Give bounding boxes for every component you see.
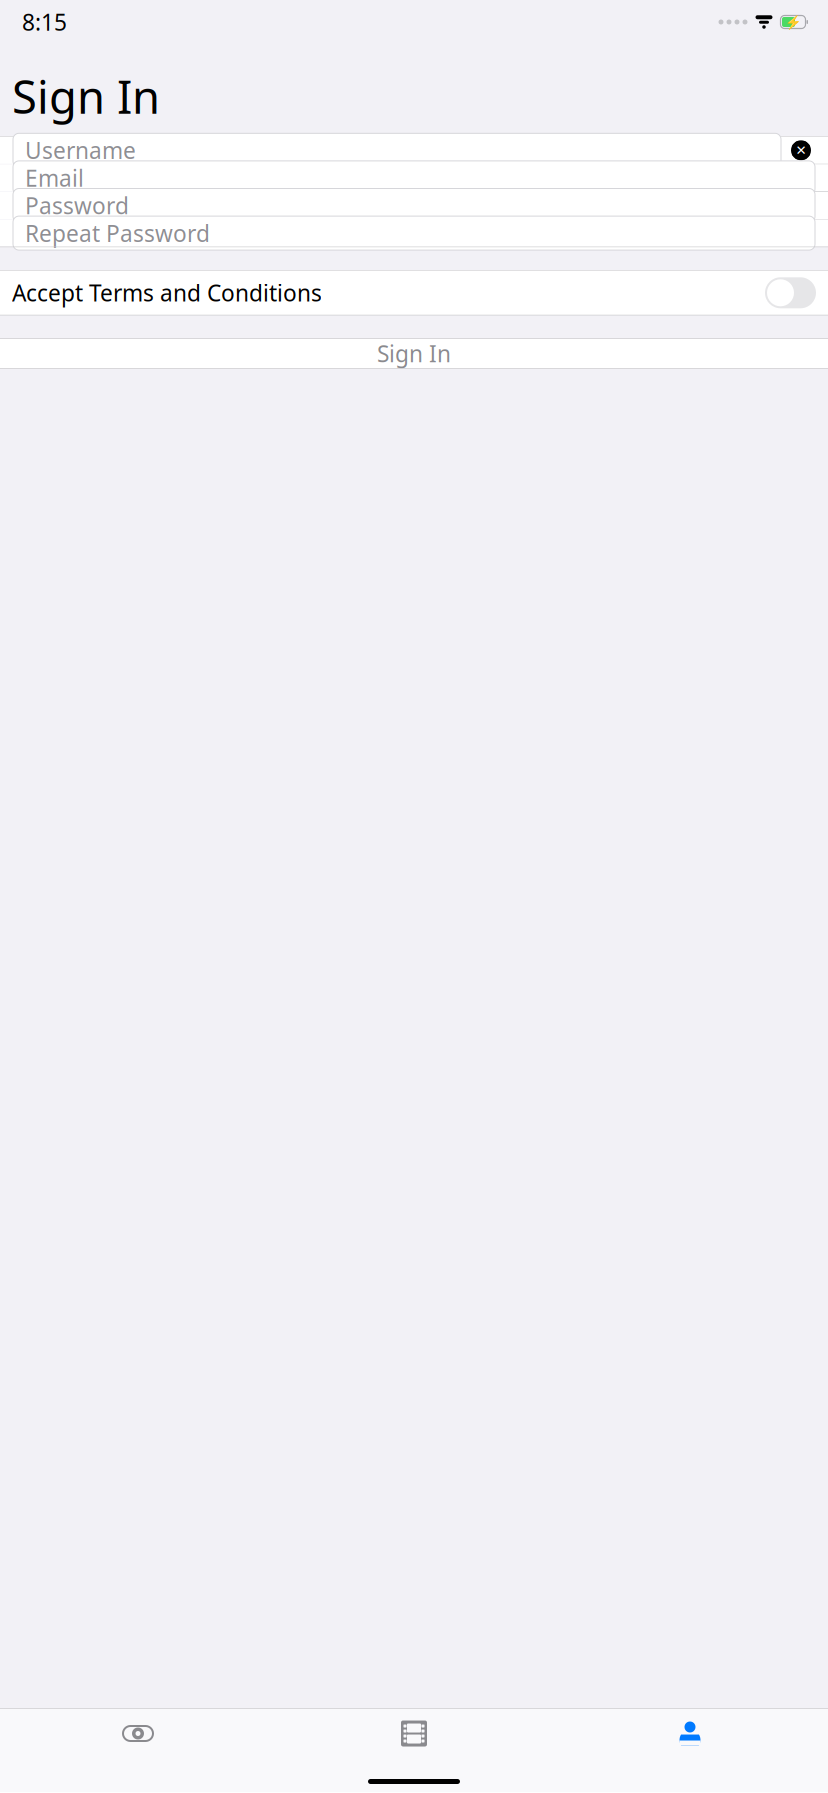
staticText: Sign In bbox=[377, 338, 451, 368]
staticText: ⚡ bbox=[784, 14, 801, 30]
staticText: 8:15 bbox=[22, 7, 67, 37]
staticText: Password bbox=[25, 190, 129, 220]
staticText: Accept Terms and Conditions bbox=[12, 278, 322, 308]
staticText: Username bbox=[25, 135, 136, 165]
button[interactable]: Browse bbox=[0, 1709, 276, 1758]
staticText: Email bbox=[25, 163, 84, 193]
staticText: Sign In bbox=[12, 66, 160, 126]
button[interactable]: Clear username bbox=[787, 137, 815, 164]
button[interactable]: Profile bbox=[552, 1709, 828, 1758]
staticText: Repeat Password bbox=[25, 218, 210, 248]
button[interactable]: Movies bbox=[276, 1709, 552, 1758]
button[interactable]: Accept Terms and Conditions bbox=[0, 271, 828, 315]
staticText: ✕ bbox=[795, 143, 806, 158]
button[interactable]: Sign In bbox=[0, 339, 828, 368]
